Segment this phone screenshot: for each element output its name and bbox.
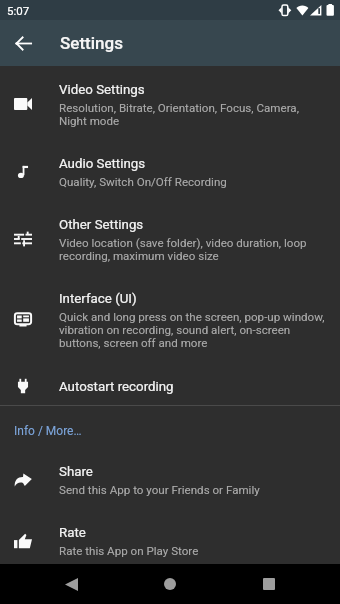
staticText: 5:07 <box>7 4 30 17</box>
staticText: Rate this App on Play Store <box>59 544 199 557</box>
button[interactable]: Video Settings <box>0 67 340 141</box>
button[interactable]: Autostart recording <box>0 363 340 405</box>
button[interactable]: Rate <box>0 510 340 571</box>
staticText: Resolution, Bitrate, Orientation, Focus,… <box>59 101 325 127</box>
staticText: Autostart recording <box>59 378 174 395</box>
staticText: Quick and long press on the screen, pop-… <box>59 310 325 349</box>
button[interactable]: Share <box>0 449 340 510</box>
button[interactable]: Info / More… <box>0 406 340 449</box>
staticText: Rate <box>59 524 86 541</box>
staticText: Quality, Switch On/Off Recording <box>59 175 227 188</box>
staticText: Share <box>59 463 93 480</box>
staticText: Settings <box>60 33 123 53</box>
staticText: Other Settings <box>59 216 144 233</box>
staticText: Interface (UI) <box>59 290 137 307</box>
button[interactable]: Audio Settings <box>0 141 340 202</box>
staticText: Info / More… <box>14 424 82 438</box>
staticText: Video Settings <box>59 81 145 98</box>
button[interactable]: Back <box>7 27 39 59</box>
staticText: Video location (save folder), video dura… <box>59 236 325 262</box>
button[interactable]: Back <box>58 571 84 597</box>
button[interactable]: Recent apps <box>256 571 282 597</box>
button[interactable]: Interface (UI) <box>0 276 340 363</box>
button[interactable]: Other Settings <box>0 202 340 276</box>
staticText: Send this App to your Friends or Family <box>59 483 260 496</box>
button[interactable]: Home <box>157 571 183 597</box>
staticText: Audio Settings <box>59 155 146 172</box>
